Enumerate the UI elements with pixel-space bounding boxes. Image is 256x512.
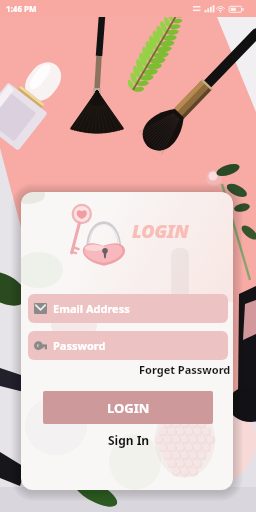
- staticText: Email Address: [53, 301, 130, 316]
- button[interactable]: LOGIN: [43, 391, 213, 424]
- button[interactable]: Sign In: [108, 432, 150, 448]
- staticText: LOGIN: [132, 219, 189, 244]
- button[interactable]: Forget Password: [139, 362, 231, 377]
- staticText: 1:46 PM: [6, 3, 37, 14]
- staticText: LOGIN: [107, 399, 150, 417]
- staticText: Password: [53, 338, 106, 353]
- button[interactable]: Email Address: [28, 294, 228, 323]
- button[interactable]: Password: [28, 331, 228, 360]
